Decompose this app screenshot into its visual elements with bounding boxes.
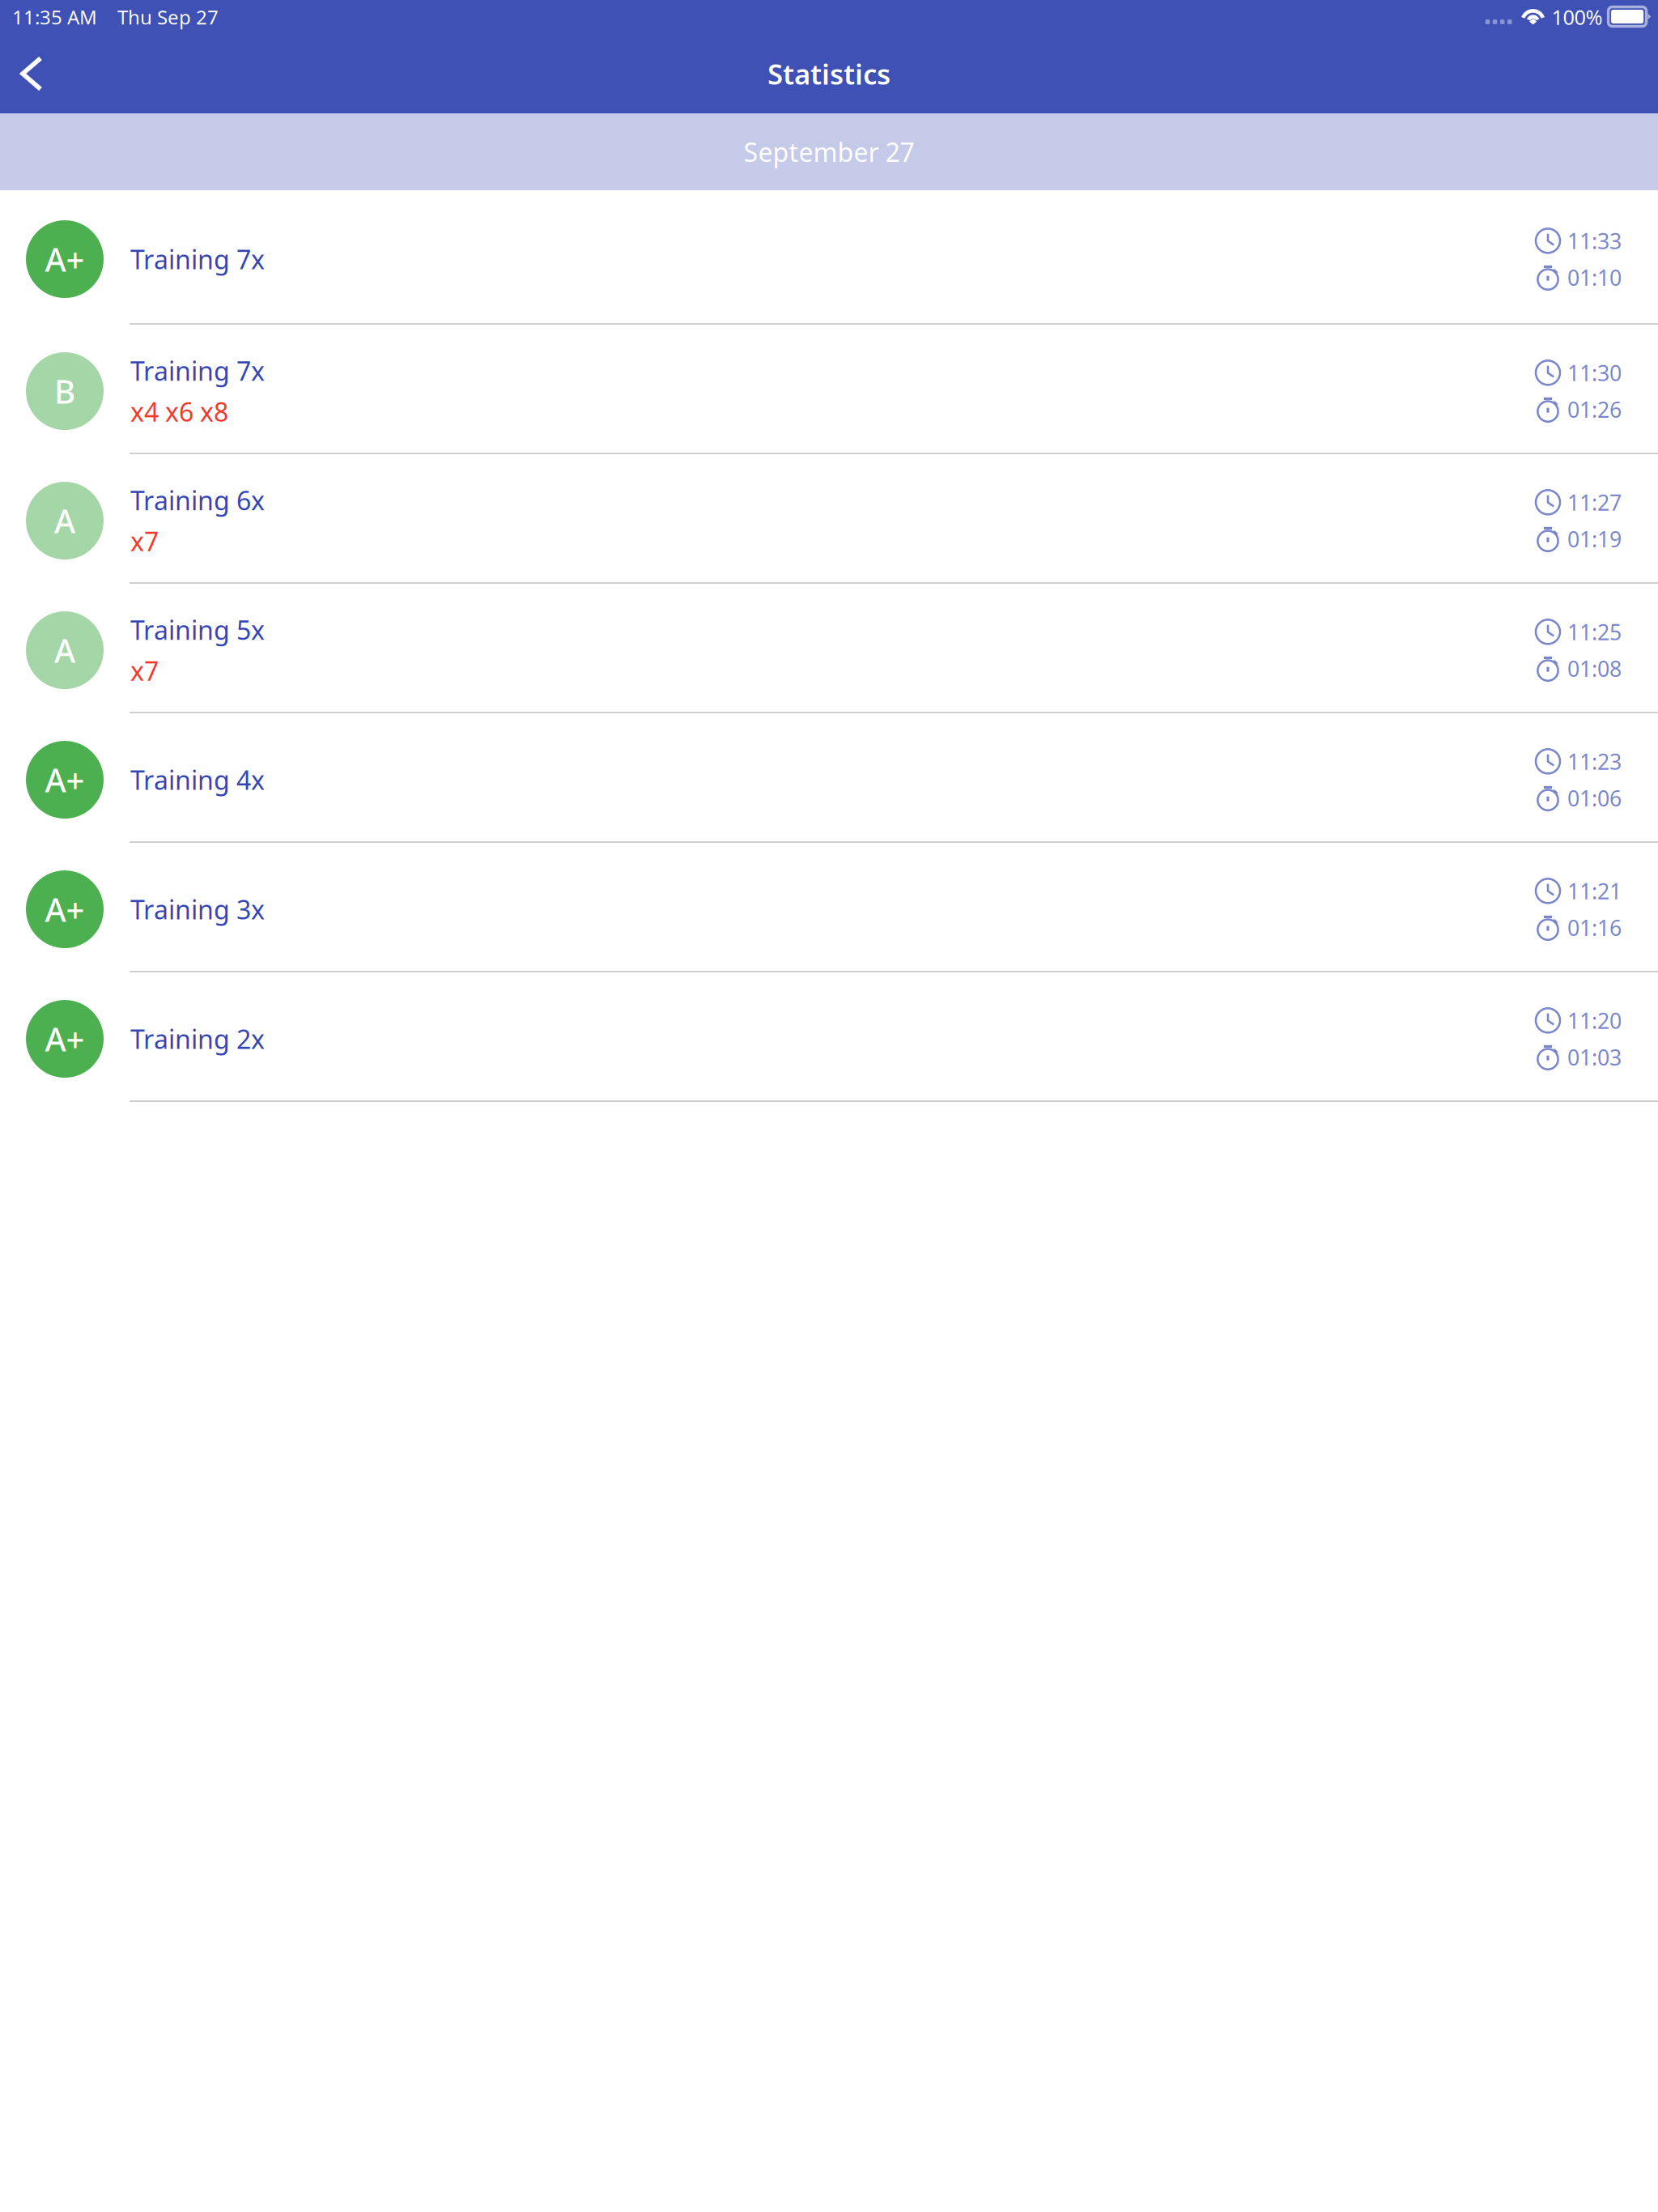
staticText: 100% xyxy=(1552,3,1603,31)
staticText: A xyxy=(54,629,75,672)
staticText: A xyxy=(54,499,75,542)
staticText: Training 7x xyxy=(130,353,265,388)
staticText: 01:06 xyxy=(1567,784,1622,812)
staticText: 01:19 xyxy=(1567,525,1622,553)
staticText: A+ xyxy=(45,238,85,281)
staticText: Training 6x xyxy=(130,483,265,517)
staticText: Training 2x xyxy=(130,1022,265,1056)
staticText: Training 7x xyxy=(130,242,265,276)
button[interactable]: A xyxy=(0,454,1658,584)
button[interactable]: A+ xyxy=(0,713,1658,843)
staticText: Training 5x xyxy=(130,613,265,647)
staticText: B xyxy=(54,370,75,413)
staticText: 11:30 xyxy=(1567,358,1622,387)
staticText: x7 xyxy=(130,524,159,558)
staticText: x7 xyxy=(130,653,159,688)
button[interactable]: A xyxy=(0,584,1658,713)
staticText: Training 4x xyxy=(130,763,265,797)
staticText: 01:08 xyxy=(1567,654,1622,683)
button[interactable]: A+ xyxy=(0,972,1658,1102)
staticText: Statistics xyxy=(767,55,891,92)
staticText: 01:16 xyxy=(1567,913,1622,942)
staticText: A+ xyxy=(45,758,85,801)
staticText: 01:26 xyxy=(1567,395,1622,424)
button[interactable]: A+ xyxy=(0,190,1658,325)
staticText: 11:21 xyxy=(1567,877,1622,905)
staticText: Training 3x xyxy=(130,892,265,926)
staticText: A+ xyxy=(45,1017,85,1060)
staticText: 11:35 AM xyxy=(12,4,97,30)
button[interactable]: A+ xyxy=(0,843,1658,972)
staticText: 11:23 xyxy=(1567,747,1622,776)
staticText: 11:20 xyxy=(1567,1006,1622,1035)
staticText: September 27 xyxy=(744,135,914,169)
staticText: x4 x6 x8 xyxy=(130,394,228,429)
button[interactable]: B xyxy=(0,325,1658,454)
staticText: 11:33 xyxy=(1567,226,1622,255)
staticText: 11:27 xyxy=(1567,488,1622,517)
staticText: 01:10 xyxy=(1567,263,1622,292)
staticText: 11:25 xyxy=(1567,617,1622,646)
staticText: A+ xyxy=(45,888,85,931)
staticText: Thu Sep 27 xyxy=(117,4,219,30)
button[interactable]: Back xyxy=(0,34,63,113)
staticText: 01:03 xyxy=(1567,1043,1622,1072)
